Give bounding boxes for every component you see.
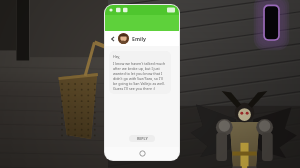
- button[interactable]: Home: [139, 150, 146, 157]
- staticText: Emily: [132, 35, 147, 42]
- staticText: I know we haven't talked much after we b…: [113, 61, 167, 91]
- button[interactable]: Emily profile photo: [118, 33, 129, 44]
- button[interactable]: Hey,: [109, 51, 171, 94]
- staticText: REPLY: [137, 136, 148, 141]
- button[interactable]: Back: [108, 34, 117, 43]
- staticText: Hey,: [113, 54, 121, 59]
- button[interactable]: REPLY: [129, 135, 155, 142]
